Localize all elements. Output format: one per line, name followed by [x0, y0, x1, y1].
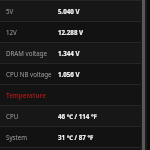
- button[interactable]: DRAM voltage: [0, 43, 141, 63]
- staticText: CPU: [6, 112, 19, 120]
- staticText: 31 ℃ / 87 ℉: [58, 133, 94, 141]
- staticText: System: [6, 133, 28, 141]
- staticText: 5V: [6, 7, 14, 15]
- staticText: 5.040 V: [58, 7, 80, 15]
- staticText: Temperature: [6, 91, 46, 99]
- button[interactable]: CPU: [0, 106, 141, 126]
- button[interactable]: System: [0, 127, 141, 147]
- staticText: 12V: [6, 28, 17, 36]
- staticText: CPU NB voltage: [6, 70, 52, 78]
- button[interactable]: Scroll: [141, 0, 150, 150]
- staticText: DRAM voltage: [6, 49, 48, 57]
- button[interactable]: Temperature: [0, 85, 141, 105]
- button[interactable]: CPU NB voltage: [0, 64, 141, 84]
- staticText: 1.056 V: [58, 70, 80, 78]
- button[interactable]: 12V: [0, 22, 141, 42]
- staticText: 1.344 V: [58, 49, 80, 57]
- staticText: 12.288 V: [58, 28, 84, 36]
- staticText: 46 ℃ / 114 ℉: [58, 112, 97, 120]
- button[interactable]: 5V: [0, 1, 141, 21]
